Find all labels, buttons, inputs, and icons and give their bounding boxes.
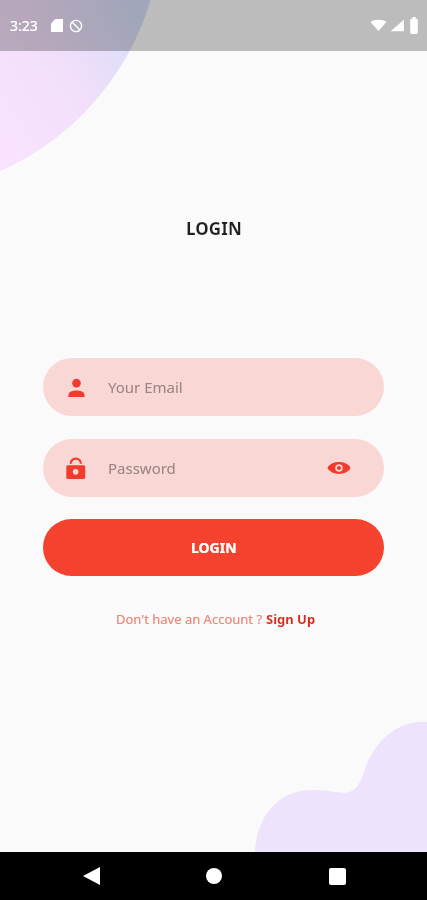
button[interactable]: Back [67,852,115,900]
staticText: 3:23 [10,16,38,35]
staticText: LOGIN [186,217,242,240]
staticText: Your Email [108,377,183,397]
button[interactable]: LOGIN [43,519,384,576]
button[interactable]: Show password [317,446,361,490]
button[interactable]: Recent apps [313,852,361,900]
button[interactable]: Home [190,852,238,900]
staticText: Don't have an Account ? [116,610,266,628]
button[interactable]: Don't have an Account ? [116,610,316,628]
staticText: Password [108,458,176,478]
button[interactable]: Your Email [43,358,384,416]
staticText: Sign Up [266,610,316,628]
staticText: LOGIN [191,538,237,557]
button[interactable]: Password [43,439,384,497]
